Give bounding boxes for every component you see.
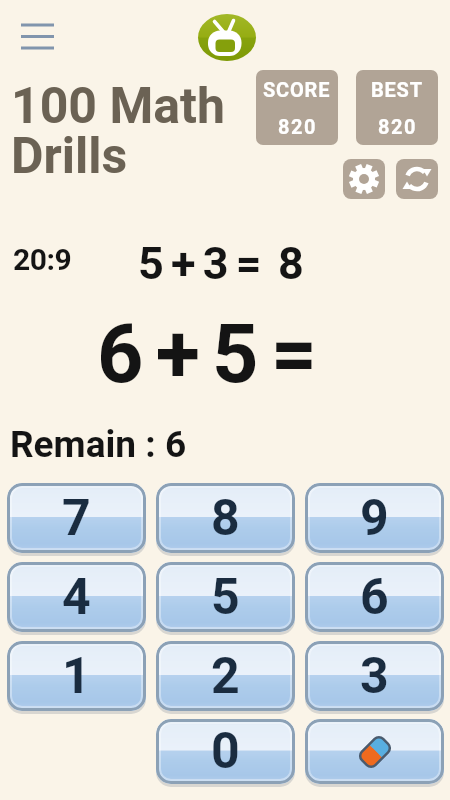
staticText: 20:9: [13, 242, 72, 277]
button[interactable]: SCORE: [256, 70, 338, 145]
staticText: BEST: [371, 78, 423, 101]
staticText: Drills: [11, 127, 128, 186]
button[interactable]: 6: [305, 562, 444, 632]
button[interactable]: 7: [7, 483, 146, 553]
staticText: 2: [211, 647, 240, 706]
staticText: 0: [211, 722, 240, 781]
staticText: 4: [62, 568, 91, 627]
staticText: 1: [62, 647, 91, 706]
button[interactable]: [343, 159, 385, 199]
button[interactable]: [396, 159, 438, 199]
staticText: 7: [62, 489, 91, 548]
staticText: Remain : 6: [10, 423, 187, 466]
staticText: 8: [211, 489, 240, 548]
staticText: SCORE: [263, 78, 331, 101]
staticText: 820: [278, 115, 317, 138]
button[interactable]: 8: [156, 483, 295, 553]
staticText: 3: [360, 647, 389, 706]
button[interactable]: 5: [156, 562, 295, 632]
staticText: 5 + 3 = 8: [138, 237, 302, 290]
button[interactable]: [12, 15, 62, 59]
staticText: 6 + 5 =: [97, 307, 314, 402]
button[interactable]: 2: [156, 641, 295, 711]
button[interactable]: 4: [7, 562, 146, 632]
button[interactable]: 3: [305, 641, 444, 711]
button[interactable]: BEST: [356, 70, 438, 145]
staticText: 100 Math: [11, 77, 226, 136]
staticText: 5: [211, 568, 240, 627]
button[interactable]: 9: [305, 483, 444, 553]
staticText: 9: [360, 489, 389, 548]
staticText: 6: [360, 568, 389, 627]
button[interactable]: 1: [7, 641, 146, 711]
staticText: 820: [378, 115, 417, 138]
button[interactable]: [305, 719, 444, 784]
button[interactable]: 0: [156, 719, 295, 784]
